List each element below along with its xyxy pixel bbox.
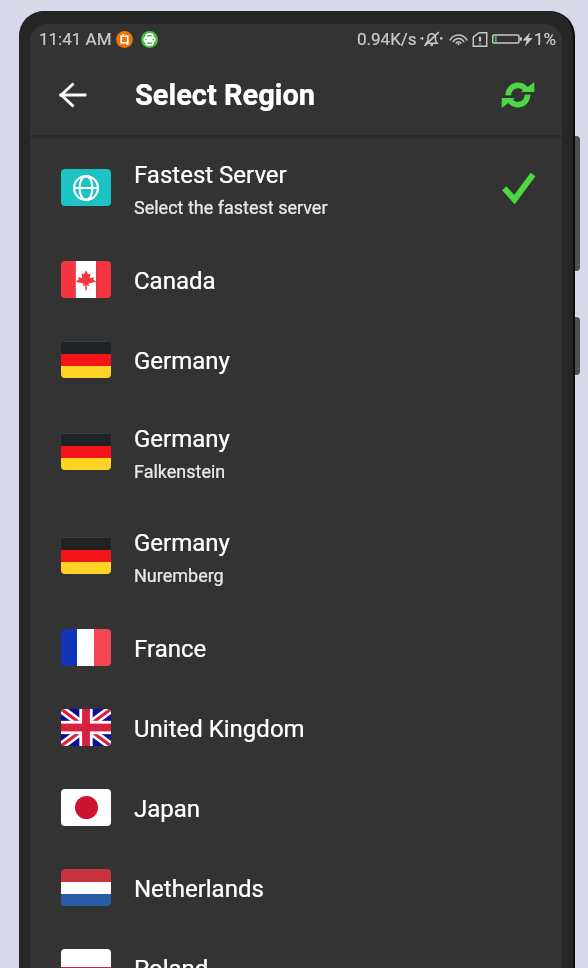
button[interactable]: Germany — [30, 319, 562, 399]
button[interactable]: Poland — [30, 927, 562, 968]
staticText: United Kingdom — [134, 715, 305, 743]
button[interactable]: United Kingdom — [30, 687, 562, 767]
staticText: Japan — [134, 795, 201, 823]
staticText: Select the fastest server — [134, 197, 328, 218]
staticText: Germany — [134, 529, 230, 557]
button[interactable]: Fastest Server — [30, 135, 562, 239]
staticText: 1% — [534, 29, 557, 49]
button[interactable]: Refresh — [487, 64, 549, 126]
staticText: Poland — [134, 955, 209, 968]
staticText: Falkenstein — [134, 461, 226, 482]
staticText: 0.94K/s — [357, 29, 417, 49]
staticText: Germany — [134, 347, 230, 375]
button[interactable]: Back — [41, 64, 103, 126]
staticText: Netherlands — [134, 875, 264, 903]
button[interactable]: Germany — [30, 399, 562, 503]
button[interactable]: France — [30, 607, 562, 687]
staticText: Fastest Server — [134, 161, 287, 189]
button[interactable]: Canada — [30, 239, 562, 319]
staticText: 11:41 AM — [39, 29, 112, 49]
staticText: Select Region — [135, 78, 316, 112]
staticText: Canada — [134, 267, 216, 295]
button[interactable]: Netherlands — [30, 847, 562, 927]
button[interactable]: Germany — [30, 503, 562, 607]
staticText: Nuremberg — [134, 565, 224, 586]
staticText: Germany — [134, 425, 230, 453]
button[interactable]: Japan — [30, 767, 562, 847]
staticText: France — [134, 635, 207, 663]
